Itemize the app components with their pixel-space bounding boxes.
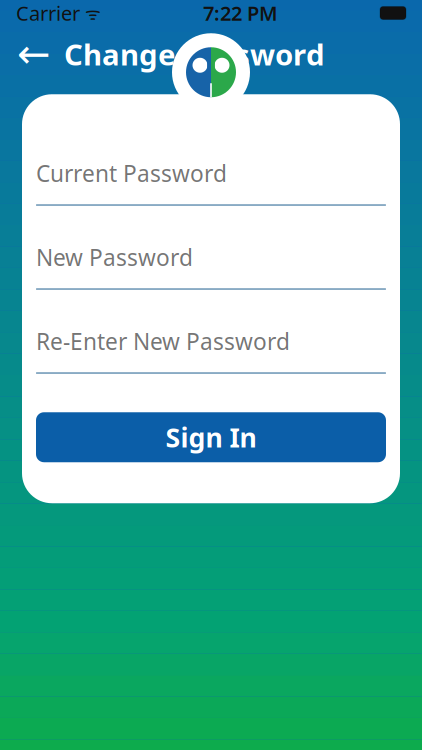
staticText: ← xyxy=(17,31,51,77)
staticText: New Password xyxy=(36,242,193,272)
staticText: Current Password xyxy=(36,158,227,188)
staticText: ᯤ xyxy=(80,1,101,24)
staticText: Carrier xyxy=(16,0,80,26)
staticText: Re-Enter New Password xyxy=(36,326,290,356)
staticText: Change Password xyxy=(64,34,325,73)
staticText: 7:22 PM xyxy=(203,0,278,26)
staticText: Sign In xyxy=(165,419,256,455)
button[interactable]: Back xyxy=(12,32,56,76)
button[interactable]: Sign In xyxy=(36,412,386,462)
